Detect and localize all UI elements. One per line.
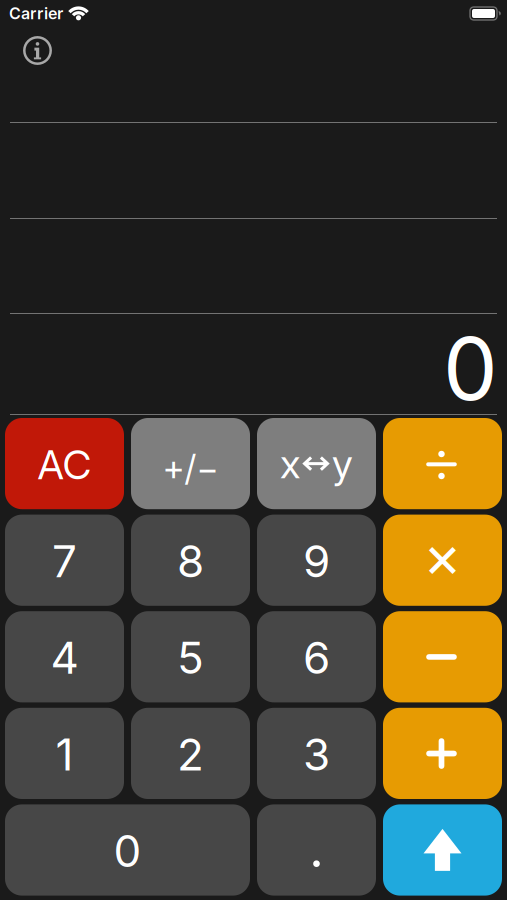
staticText: +/− (162, 448, 218, 489)
staticText: 0 (113, 825, 141, 877)
staticText: 9 (303, 535, 330, 587)
staticText: y (332, 440, 353, 487)
button[interactable]: Info (23, 36, 52, 65)
button[interactable]: +/− (131, 418, 250, 509)
button[interactable]: Decimal point (257, 804, 376, 896)
button[interactable]: Enter (383, 804, 502, 896)
button[interactable]: 0 (5, 804, 250, 896)
staticText: x (280, 440, 300, 487)
staticText: × (423, 521, 462, 590)
button[interactable]: × (383, 515, 502, 606)
button[interactable]: Divide (383, 418, 502, 509)
button[interactable]: Subtract (383, 611, 502, 702)
staticText: 7 (52, 535, 77, 587)
staticText: 8 (177, 535, 204, 587)
button[interactable]: 6 (257, 611, 376, 702)
staticText: 5 (177, 632, 204, 684)
staticText: 2 (177, 728, 204, 780)
staticText: 3 (303, 728, 330, 780)
staticText: Carrier (9, 4, 63, 23)
staticText: 6 (303, 632, 330, 684)
button[interactable]: 8 (131, 515, 250, 606)
button[interactable]: 4 (5, 611, 124, 702)
staticText: 0 (443, 317, 498, 420)
button[interactable]: Add (383, 708, 502, 799)
button[interactable]: Swap x and y (257, 418, 376, 509)
button[interactable]: 1 (5, 708, 124, 799)
button[interactable]: 3 (257, 708, 376, 799)
button[interactable]: 5 (131, 611, 250, 702)
button[interactable]: AC (5, 418, 124, 509)
button[interactable]: 2 (131, 708, 250, 799)
button[interactable]: 7 (5, 515, 124, 606)
staticText: AC (37, 441, 91, 488)
staticText: 1 (55, 728, 73, 780)
staticText: 4 (50, 632, 78, 684)
button[interactable]: 9 (257, 515, 376, 606)
